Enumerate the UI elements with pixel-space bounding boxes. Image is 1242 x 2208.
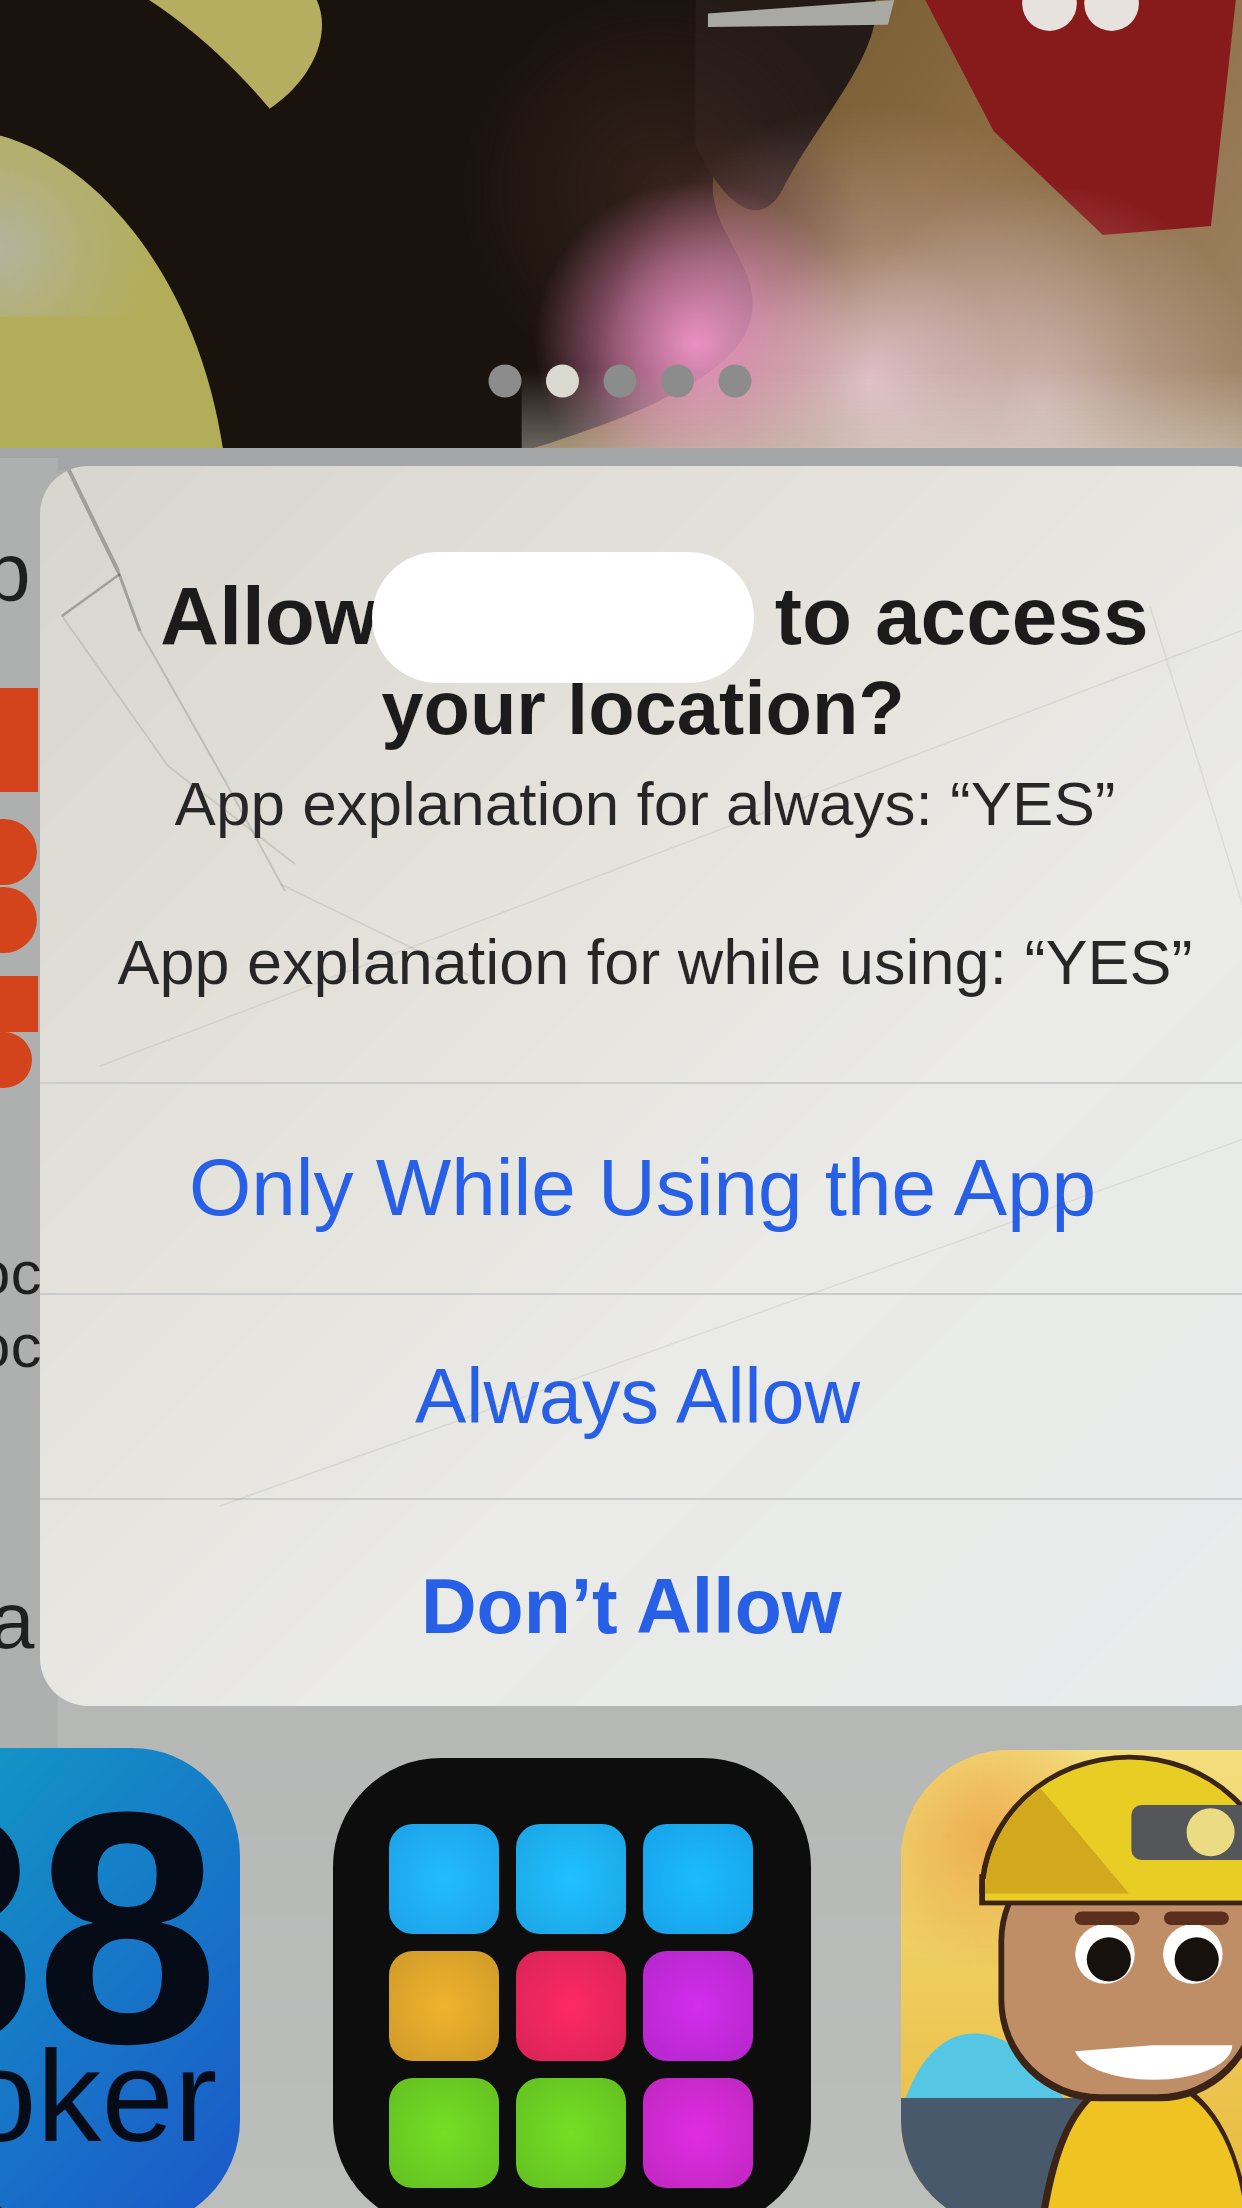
button[interactable]: Featured game screenshot xyxy=(0,0,1242,452)
staticText: Only While Using the App xyxy=(189,1143,1097,1232)
staticText: Always Allow xyxy=(415,1353,861,1439)
staticText: oc xyxy=(0,1238,42,1307)
button[interactable]: Drum pads xyxy=(333,1758,811,2208)
staticText: App explanation for always: “YES” xyxy=(40,769,1242,838)
button[interactable]: Idle Miner game xyxy=(901,1750,1242,2208)
staticText: App explanation for while using: “YES” xyxy=(40,927,1242,997)
button[interactable]: Don’t Allow xyxy=(40,1498,1242,1706)
staticText: p xyxy=(0,525,31,619)
button[interactable]: Always Allow xyxy=(40,1293,1242,1498)
staticText: 888 xyxy=(0,1748,240,2208)
staticText: ” to access xyxy=(711,570,1149,662)
button[interactable]: 888 poker xyxy=(0,1748,240,2208)
staticText: Allow “ xyxy=(160,570,443,662)
staticText: oc xyxy=(0,1311,42,1380)
staticText: your location? xyxy=(40,665,1242,750)
staticText: poker xyxy=(0,2023,218,2168)
staticText: a xyxy=(0,1576,35,1665)
button[interactable]: Only While Using the App xyxy=(40,1082,1242,1293)
staticText: Don’t Allow xyxy=(421,1563,842,1649)
